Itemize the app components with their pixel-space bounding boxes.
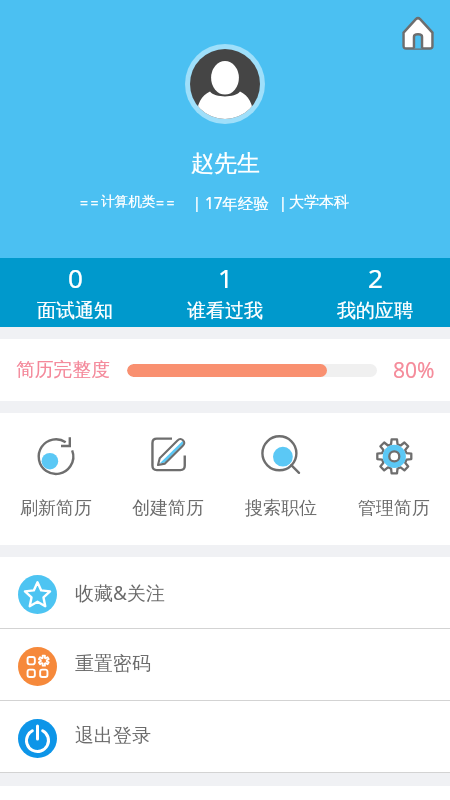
button[interactable]: 2 — [300, 258, 450, 327]
staticText: 大学本科 — [289, 193, 349, 212]
button[interactable]: 收藏&关注 — [0, 557, 450, 628]
staticText: 收藏&关注 — [75, 580, 165, 606]
staticText: | — [193, 193, 201, 212]
button[interactable]: 搜索职位 — [224, 413, 337, 545]
staticText: 退出登录 — [75, 724, 151, 748]
staticText: | — [279, 193, 287, 212]
staticText: == — [156, 193, 178, 212]
button[interactable]: 1 — [150, 258, 300, 327]
staticText: 管理简历 — [358, 497, 430, 520]
staticText: 搜索职位 — [245, 497, 317, 520]
staticText: 17年经验 — [205, 193, 269, 213]
button[interactable]: 0 — [0, 258, 150, 327]
staticText: 谁看过我 — [187, 299, 263, 323]
button[interactable]: 创建简历 — [112, 413, 224, 545]
staticText: 刷新简历 — [20, 497, 92, 520]
staticText: 赵先生 — [191, 149, 260, 178]
staticText: 0 — [68, 260, 83, 295]
staticText: 我的应聘 — [337, 299, 413, 323]
button[interactable]: 刷新简历 — [0, 413, 112, 545]
staticText: 简历完整度 — [16, 358, 110, 382]
button[interactable]: 退出登录 — [0, 701, 450, 772]
staticText: == — [80, 193, 102, 212]
staticText: 计算机类 — [101, 193, 156, 210]
staticText: 80% — [393, 356, 435, 385]
staticText: 重置密码 — [75, 652, 151, 676]
button[interactable]: Home — [398, 13, 438, 53]
staticText: 1 — [218, 260, 233, 295]
staticText: 创建简历 — [132, 497, 204, 520]
button[interactable]: 管理简历 — [337, 413, 450, 545]
staticText: 面试通知 — [37, 299, 113, 323]
button[interactable]: 重置密码 — [0, 629, 450, 700]
staticText: 2 — [368, 260, 383, 295]
